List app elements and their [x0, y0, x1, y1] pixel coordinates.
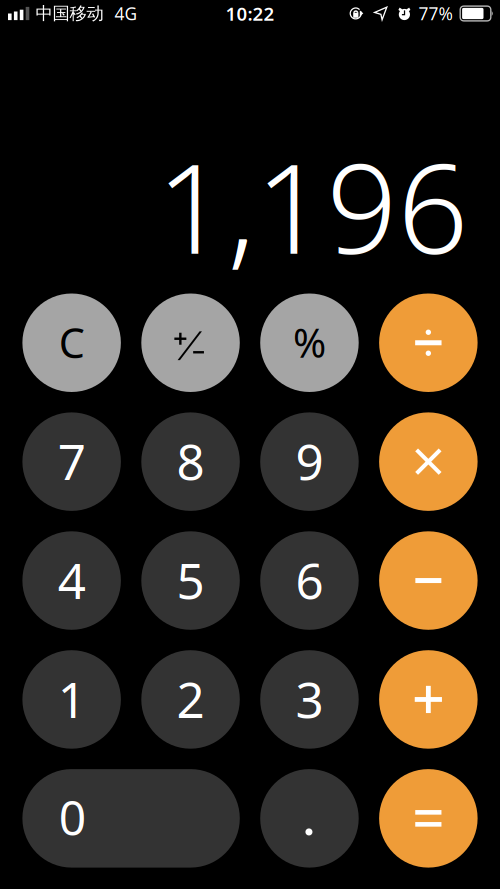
button[interactable]: Plus minus	[141, 293, 240, 392]
staticText: 2	[177, 666, 205, 731]
staticText: 4G	[114, 2, 137, 25]
button[interactable]: 9	[260, 412, 359, 511]
button[interactable]: 5	[141, 531, 240, 630]
button[interactable]: 1	[22, 650, 121, 749]
button[interactable]: Minus	[379, 531, 478, 630]
button[interactable]: 6	[260, 531, 359, 630]
button[interactable]: 2	[141, 650, 240, 749]
button[interactable]: Decimal point	[260, 769, 359, 868]
button[interactable]: 0	[22, 769, 240, 868]
staticText: 9	[295, 428, 323, 494]
staticText: %	[293, 316, 326, 369]
staticText: 10:22	[225, 1, 274, 26]
button[interactable]: Divide	[379, 293, 478, 392]
staticText: 77%	[418, 2, 452, 25]
button[interactable]: %	[260, 293, 359, 392]
button[interactable]: Equals	[379, 769, 478, 868]
button[interactable]: Multiply	[379, 412, 478, 511]
staticText: 6	[295, 547, 323, 613]
staticText: 5	[177, 547, 205, 613]
button[interactable]: 3	[260, 650, 359, 749]
staticText: 1,196	[156, 123, 468, 288]
staticText: 8	[177, 428, 205, 494]
button[interactable]: C	[22, 293, 121, 392]
staticText: 中国移动	[35, 3, 103, 24]
button[interactable]: Plus	[379, 650, 478, 749]
button[interactable]: 8	[141, 412, 240, 511]
button[interactable]: 4	[22, 531, 121, 630]
button[interactable]: 7	[22, 412, 121, 511]
staticText: 4	[58, 547, 86, 613]
staticText: 3	[295, 666, 323, 731]
staticText: C	[59, 315, 85, 370]
staticText: 0	[59, 785, 86, 849]
staticText: 7	[58, 428, 86, 494]
staticText: 1	[58, 666, 86, 731]
